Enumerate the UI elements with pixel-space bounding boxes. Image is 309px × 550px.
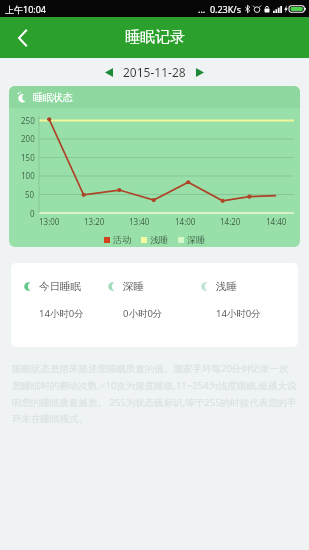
staticText: 睡眠状态 [33, 91, 73, 104]
button[interactable]: Back [0, 17, 46, 58]
staticText: 200 [21, 133, 35, 144]
button[interactable]: 今日睡眠 [11, 263, 298, 347]
staticText: 13:20 [84, 216, 105, 227]
staticText: 上午10:04 [5, 3, 47, 15]
staticText: 2015-11-28 [123, 64, 186, 80]
staticText: 250 [21, 115, 35, 126]
staticText: 150 [21, 152, 35, 163]
staticText: 睡眠记录 [125, 28, 185, 47]
staticText: 浅睡 [150, 234, 168, 245]
staticText: 深睡 [123, 280, 144, 293]
staticText: 14小时0分 [39, 307, 84, 320]
staticText: 睡眠状态是用来描述您睡眠质量的值。惠家手环每20分钟记录一次您睡眠时的翻动次数,… [12, 362, 297, 425]
staticText: 50 [25, 189, 35, 200]
staticText: 13:40 [129, 216, 150, 227]
staticText: 14:20 [220, 216, 241, 227]
staticText: 13:00 [39, 216, 60, 227]
staticText: 今日睡眠 [39, 280, 81, 293]
staticText: 0小时0分 [123, 307, 163, 320]
staticText: 深睡 [187, 234, 205, 245]
staticText: ... 0.23K/s [198, 3, 242, 15]
staticText: 0 [30, 208, 35, 219]
staticText: 14:00 [175, 216, 196, 227]
button[interactable]: Next day [189, 63, 211, 81]
staticText: 14小时0分 [216, 307, 261, 320]
staticText: 活动 [113, 234, 131, 245]
staticText: 100 [21, 170, 35, 181]
staticText: 14:40 [266, 216, 287, 227]
staticText: 浅睡 [216, 280, 237, 293]
button[interactable]: Previous day [98, 63, 120, 81]
